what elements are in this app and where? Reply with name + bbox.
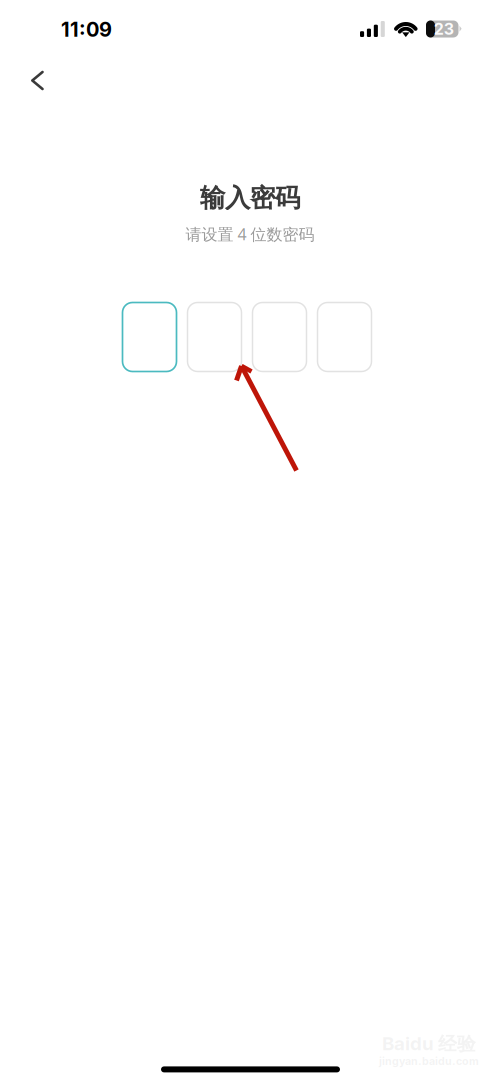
staticText: 11:09 [61, 17, 112, 42]
button[interactable]: Passcode digit 2 [187, 302, 241, 371]
button[interactable]: Passcode digit 3 [252, 302, 306, 371]
staticText: Baidu 经验 [382, 1032, 476, 1056]
button[interactable]: Passcode digit 1 [122, 302, 176, 371]
staticText: 23 [434, 19, 454, 39]
button[interactable]: Passcode digit 4 [317, 302, 371, 371]
staticText: jingyan.baidu.com [379, 1054, 479, 1067]
button[interactable]: Back [15, 58, 59, 102]
staticText: 输入密码 [200, 182, 300, 213]
staticText: 请设置 4 位数密码 [185, 223, 314, 245]
